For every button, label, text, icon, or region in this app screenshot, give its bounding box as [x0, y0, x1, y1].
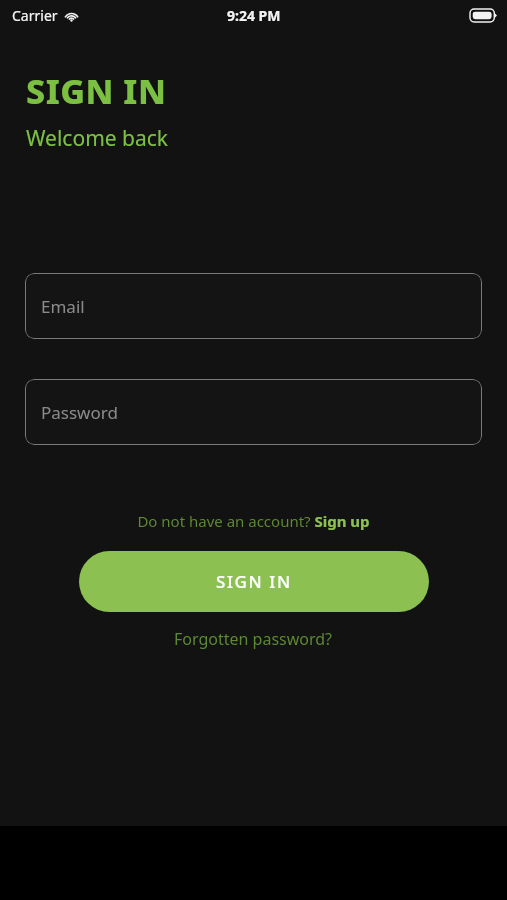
button[interactable]: Forgotten password? [0, 624, 507, 654]
staticText: SIGN IN [216, 570, 292, 593]
button[interactable]: SIGN IN [79, 551, 429, 612]
button[interactable]: Password [25, 379, 482, 445]
staticText: Forgotten password? [174, 628, 333, 650]
button[interactable]: Do not have an account? Sign up [0, 507, 507, 535]
staticText: SIGN IN [26, 68, 167, 114]
staticText: 9:24 PM [227, 6, 281, 25]
staticText: Do not have an account? Sign up [137, 511, 370, 531]
staticText: Carrier [12, 6, 58, 25]
staticText: Password [41, 401, 118, 424]
button[interactable]: Email [25, 273, 482, 339]
staticText: Welcome back [26, 124, 169, 153]
staticText: Email [41, 295, 85, 318]
